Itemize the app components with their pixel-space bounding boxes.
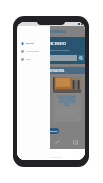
- button[interactable]: Beranda: [21, 39, 50, 47]
- staticText: Beranda: [26, 42, 34, 45]
- button[interactable]: Search: [78, 55, 84, 61]
- button[interactable]: Cari: [18, 55, 77, 61]
- staticText: ENKINDO: [50, 29, 67, 34]
- button[interactable]: Galeri: [73, 140, 78, 145]
- button[interactable]: Statistik: [55, 140, 60, 145]
- staticText: BERANDA: [49, 69, 65, 73]
- staticText: Profil: [26, 58, 31, 61]
- button[interactable]: Profil: [21, 55, 50, 63]
- staticText: Cari: [20, 57, 24, 59]
- staticText: teknik indonesia: [50, 34, 64, 36]
- staticText: MEETING AWAL PEKERJAAN "KONSTRUKSI" BAY: [56, 95, 78, 107]
- button[interactable]: Login Pegawai: [21, 47, 50, 55]
- button[interactable]: Beranda: [17, 26, 50, 160]
- button[interactable]: SELENGKAPNYA: [43, 128, 59, 134]
- staticText: SELENGKAPNYA: [44, 130, 58, 132]
- staticText: Login Pegawai: [26, 50, 39, 53]
- staticText: PT. Enkindo Teknik Indonesia: [45, 49, 70, 51]
- staticText: ENK INDO: [45, 41, 67, 47]
- button[interactable]: MEETING AWAL PEKERJAAN "KONSTRUKSI" BAY: [53, 77, 81, 122]
